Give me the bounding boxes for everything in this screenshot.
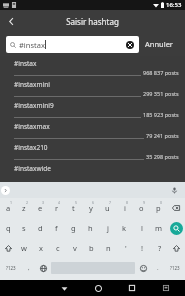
staticText: a: [6, 203, 11, 213]
staticText: Saisir hashtag: [0, 16, 185, 27]
staticText: v: [73, 243, 77, 253]
staticText: 0: [160, 200, 163, 205]
button[interactable]: h: [82, 218, 99, 238]
button[interactable]: d: [32, 218, 48, 238]
staticText: e: [38, 203, 43, 213]
staticText: 7: [109, 200, 112, 205]
staticText: k: [122, 223, 127, 233]
button[interactable]: Annuler: [139, 36, 179, 52]
staticText: ?: [158, 243, 162, 253]
button[interactable]: Clear search: [124, 39, 135, 50]
button[interactable]: n: [100, 238, 117, 258]
button[interactable]: #instax: [0, 56, 185, 77]
button[interactable]: 7: [99, 198, 116, 218]
staticText: 185 923 posts: [143, 111, 179, 118]
button[interactable]: j: [99, 218, 116, 238]
button[interactable]: f: [48, 218, 65, 238]
staticText: 3: [42, 200, 45, 205]
button[interactable]: ?: [151, 238, 168, 258]
button[interactable]: Home: [81, 280, 115, 296]
button[interactable]: m: [150, 218, 167, 238]
button[interactable]: Backspace: [167, 198, 185, 218]
staticText: ': [125, 243, 127, 253]
button[interactable]: ': [117, 238, 134, 258]
button[interactable]: ?123: [164, 258, 185, 278]
button[interactable]: v: [66, 238, 83, 258]
staticText: s: [22, 223, 26, 233]
button[interactable]: 9: [133, 198, 150, 218]
staticText: 16:53: [166, 1, 182, 9]
button[interactable]: g: [65, 218, 82, 238]
staticText: p: [156, 203, 161, 213]
button[interactable]: 3: [32, 198, 48, 218]
button[interactable]: #instax210: [0, 140, 185, 161]
button[interactable]: 4: [48, 198, 65, 218]
button[interactable]: Shift: [168, 238, 185, 258]
button[interactable]: 0: [150, 198, 167, 218]
button[interactable]: b: [83, 238, 100, 258]
staticText: y: [89, 203, 93, 213]
staticText: g: [71, 223, 76, 233]
staticText: o: [139, 203, 144, 213]
button[interactable]: Shift: [0, 238, 16, 258]
button[interactable]: w: [16, 238, 32, 258]
button[interactable]: #instax: [6, 36, 139, 53]
staticText: #instaxmini: [14, 80, 50, 89]
button[interactable]: Change language: [35, 258, 51, 278]
button[interactable]: #instaxmax: [0, 119, 185, 140]
button[interactable]: q: [0, 218, 16, 238]
staticText: #instaxmax: [14, 122, 50, 131]
button[interactable]: l: [133, 218, 150, 238]
button[interactable]: Recents: [115, 280, 149, 296]
staticText: 299 351 posts: [143, 90, 179, 97]
button[interactable]: 2: [16, 198, 32, 218]
staticText: 9: [143, 200, 146, 205]
staticText: n: [106, 243, 111, 253]
staticText: m: [155, 223, 163, 233]
staticText: q: [6, 223, 11, 233]
staticText: ?123: [170, 265, 180, 271]
staticText: r: [55, 203, 59, 213]
button[interactable]: #instaxwide: [0, 161, 185, 182]
button[interactable]: .: [151, 258, 164, 278]
button[interactable]: Search: [167, 218, 185, 238]
staticText: !: [141, 243, 144, 253]
button[interactable]: #instaxmini9: [0, 98, 185, 119]
button[interactable]: ?123: [0, 258, 22, 278]
button[interactable]: 6: [82, 198, 99, 218]
staticText: x: [39, 243, 43, 253]
button[interactable]: !: [134, 238, 151, 258]
staticText: 4: [58, 200, 61, 205]
staticText: 968 837 posts: [143, 69, 179, 76]
staticText: j: [107, 223, 109, 233]
button[interactable]: c: [49, 238, 66, 258]
staticText: ,: [28, 264, 30, 272]
staticText: ?123: [6, 265, 16, 271]
button[interactable]: Screenshot: [149, 280, 183, 296]
staticText: d: [38, 223, 43, 233]
button[interactable]: x: [32, 238, 49, 258]
staticText: 35 298 posts: [146, 153, 179, 160]
button[interactable]: 1: [0, 198, 16, 218]
staticText: f: [55, 223, 58, 233]
staticText: h: [88, 223, 93, 233]
staticText: t: [72, 203, 75, 213]
staticText: .: [157, 264, 159, 272]
button[interactable]: Back: [48, 280, 81, 296]
staticText: 1: [10, 200, 13, 205]
button[interactable]: k: [116, 218, 133, 238]
button[interactable]: Voice input: [169, 185, 179, 195]
staticText: u: [105, 203, 110, 213]
staticText: i: [124, 203, 126, 213]
button[interactable]: ,: [22, 258, 35, 278]
button[interactable]: Emoji: [135, 258, 151, 278]
staticText: w: [21, 243, 27, 253]
button[interactable]: Expand toolbar: [1, 186, 10, 195]
staticText: l: [141, 223, 143, 233]
button[interactable]: s: [16, 218, 32, 238]
button[interactable]: 5: [65, 198, 82, 218]
button[interactable]: #instaxmini: [0, 77, 185, 98]
button[interactable]: Back: [0, 10, 22, 32]
button[interactable]: 8: [116, 198, 133, 218]
